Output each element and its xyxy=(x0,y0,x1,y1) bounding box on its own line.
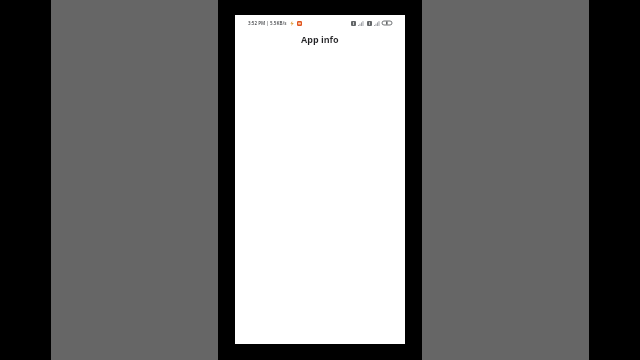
other: Mobile signal xyxy=(374,21,380,26)
other: Charging xyxy=(290,21,294,26)
other: Battery xyxy=(382,21,392,25)
other: SIM xyxy=(367,21,372,26)
other: Mobile signal xyxy=(358,21,364,26)
button[interactable]: App info xyxy=(235,31,405,47)
staticText: 3:52 PM | 5.5KB/s xyxy=(248,20,287,26)
other: SIM xyxy=(351,21,356,26)
staticText: App info xyxy=(301,33,339,45)
other: Notification xyxy=(297,21,302,26)
